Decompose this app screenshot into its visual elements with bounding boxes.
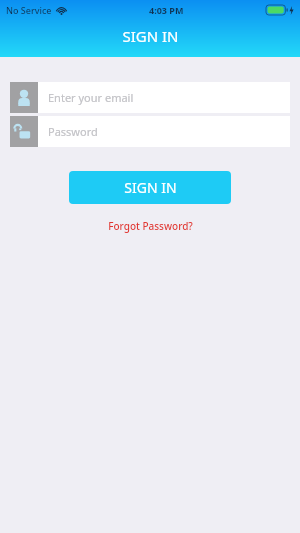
- other: Email: [17, 90, 31, 106]
- staticText: No Service: [6, 4, 52, 16]
- staticText: Forgot Password?: [108, 219, 193, 233]
- staticText: Enter your email: [48, 90, 134, 105]
- staticText: Password: [48, 124, 98, 139]
- button[interactable]: Email: [10, 82, 290, 113]
- button[interactable]: SIGN IN: [69, 171, 231, 204]
- staticText: SIGN IN: [122, 26, 179, 46]
- other: Password: [17, 124, 31, 140]
- button[interactable]: Password: [10, 116, 290, 147]
- button[interactable]: Forgot Password?: [100, 217, 201, 235]
- staticText: 4:03 PM: [149, 4, 184, 16]
- staticText: SIGN IN: [124, 178, 177, 197]
